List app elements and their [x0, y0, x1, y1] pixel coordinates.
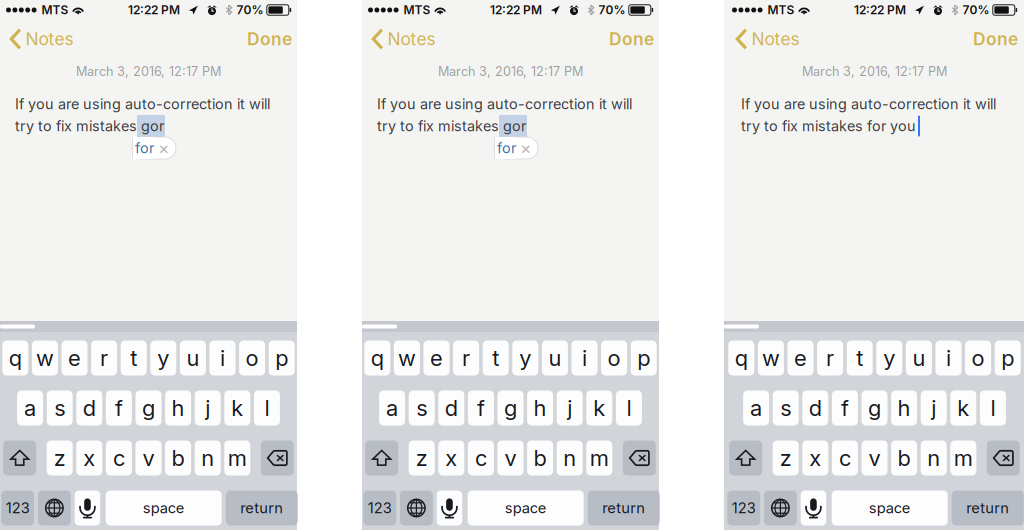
button[interactable]: m [224, 440, 250, 475]
button[interactable]: z [409, 440, 435, 475]
button[interactable]: Done [239, 23, 297, 55]
button[interactable]: z [47, 440, 73, 475]
button[interactable]: r [91, 340, 117, 375]
button[interactable]: v [135, 440, 161, 475]
button[interactable]: i [935, 340, 961, 375]
button[interactable]: g [497, 390, 523, 425]
button[interactable]: Notes [726, 23, 805, 55]
button[interactable]: Done [965, 23, 1023, 55]
button[interactable]: t [847, 340, 873, 375]
button[interactable]: l [980, 390, 1006, 425]
button[interactable]: x [802, 440, 828, 475]
button[interactable]: u [906, 340, 932, 375]
button[interactable]: f [106, 390, 132, 425]
button[interactable]: u [542, 340, 568, 375]
button[interactable]: g [861, 390, 887, 425]
button[interactable]: Switch keyboard [764, 490, 797, 525]
button[interactable]: v [497, 440, 523, 475]
button[interactable]: return [952, 490, 1024, 525]
button[interactable]: o [965, 340, 991, 375]
button[interactable]: Dictation [801, 490, 826, 525]
button[interactable]: y [150, 340, 176, 375]
button[interactable]: b [527, 440, 553, 475]
button[interactable]: j [557, 390, 583, 425]
button[interactable]: u [180, 340, 206, 375]
button[interactable]: space [106, 490, 222, 525]
button[interactable]: n [195, 440, 221, 475]
button[interactable]: a [17, 390, 43, 425]
button[interactable]: w [758, 340, 784, 375]
button[interactable]: l [616, 390, 642, 425]
button[interactable]: a [743, 390, 769, 425]
button[interactable]: return [226, 490, 298, 525]
button[interactable]: j [195, 390, 221, 425]
button[interactable]: Shift [3, 440, 36, 475]
button[interactable]: f [468, 390, 494, 425]
button[interactable]: space [832, 490, 948, 525]
button[interactable]: e [61, 340, 87, 375]
button[interactable]: y [512, 340, 538, 375]
button[interactable]: d [438, 390, 464, 425]
button[interactable]: t [483, 340, 509, 375]
button[interactable]: 123 [363, 490, 396, 525]
button[interactable]: Accept suggestion for [494, 137, 538, 159]
button[interactable]: s [773, 390, 799, 425]
button[interactable]: j [921, 390, 947, 425]
button[interactable]: k [950, 390, 976, 425]
button[interactable]: Dictation [437, 490, 462, 525]
button[interactable]: space [468, 490, 584, 525]
button[interactable]: Done [601, 23, 659, 55]
button[interactable]: z [773, 440, 799, 475]
button[interactable]: b [891, 440, 917, 475]
button[interactable]: g [135, 390, 161, 425]
button[interactable]: q [728, 340, 754, 375]
button[interactable]: h [527, 390, 553, 425]
button[interactable]: c [468, 440, 494, 475]
button[interactable]: l [254, 390, 280, 425]
button[interactable]: i [571, 340, 597, 375]
button[interactable]: w [32, 340, 58, 375]
button[interactable]: x [438, 440, 464, 475]
button[interactable]: e [787, 340, 813, 375]
button[interactable]: c [106, 440, 132, 475]
button[interactable]: q [364, 340, 390, 375]
button[interactable]: o [601, 340, 627, 375]
button[interactable]: return [588, 490, 660, 525]
button[interactable]: q [2, 340, 28, 375]
button[interactable]: v [861, 440, 887, 475]
button[interactable]: o [239, 340, 265, 375]
button[interactable]: p [995, 340, 1021, 375]
button[interactable]: p [631, 340, 657, 375]
button[interactable]: s [47, 390, 73, 425]
button[interactable]: h [891, 390, 917, 425]
button[interactable]: e [423, 340, 449, 375]
button[interactable]: d [76, 390, 102, 425]
button[interactable]: Accept suggestion for [132, 137, 176, 159]
button[interactable]: r [453, 340, 479, 375]
button[interactable]: Notes [362, 23, 441, 55]
button[interactable]: Shift [365, 440, 398, 475]
button[interactable]: w [394, 340, 420, 375]
button[interactable]: s [409, 390, 435, 425]
button[interactable]: p [269, 340, 295, 375]
button[interactable]: Notes [0, 23, 79, 55]
button[interactable]: m [586, 440, 612, 475]
button[interactable]: Delete [623, 440, 656, 475]
button[interactable]: a [379, 390, 405, 425]
button[interactable]: n [921, 440, 947, 475]
button[interactable]: 123 [727, 490, 760, 525]
button[interactable]: Switch keyboard [38, 490, 71, 525]
button[interactable]: x [76, 440, 102, 475]
button[interactable]: f [832, 390, 858, 425]
button[interactable]: h [165, 390, 191, 425]
button[interactable]: 123 [1, 490, 34, 525]
button[interactable]: Switch keyboard [400, 490, 433, 525]
button[interactable]: y [876, 340, 902, 375]
button[interactable]: b [165, 440, 191, 475]
button[interactable]: i [209, 340, 235, 375]
button[interactable]: k [586, 390, 612, 425]
button[interactable]: c [832, 440, 858, 475]
button[interactable]: Shift [729, 440, 762, 475]
button[interactable]: r [817, 340, 843, 375]
button[interactable]: Delete [261, 440, 294, 475]
